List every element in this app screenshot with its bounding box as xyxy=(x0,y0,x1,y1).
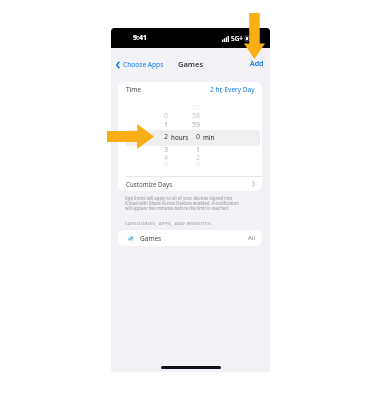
staticText: 57 xyxy=(192,103,201,113)
staticText: App limits will apply to all of your dev… xyxy=(125,195,245,211)
staticText: 2 xyxy=(164,132,169,142)
staticText: 58 xyxy=(192,111,201,121)
staticText: 2 xyxy=(196,153,201,163)
staticText: 3 xyxy=(196,160,201,170)
staticText: CATEGORIES, APPS, AND WEBSITES xyxy=(125,220,212,226)
staticText: Add xyxy=(250,59,264,69)
staticText: 9:41 xyxy=(133,33,147,43)
button[interactable]: Games xyxy=(118,230,262,246)
staticText: All xyxy=(248,234,255,242)
staticText: min xyxy=(203,133,215,141)
staticText: hours xyxy=(171,133,189,141)
staticText: Customize Days xyxy=(126,180,173,188)
staticText: 1 xyxy=(196,145,201,155)
staticText: Games xyxy=(178,59,204,69)
staticText: 4 xyxy=(164,153,169,163)
staticText: 59 xyxy=(192,120,201,130)
staticText: 5 xyxy=(164,160,169,170)
staticText: 2 hr, Every Day xyxy=(210,85,255,94)
staticText: 0 xyxy=(164,111,169,121)
staticText: 1 xyxy=(164,120,169,130)
button[interactable]: Choose Apps xyxy=(113,57,168,72)
staticText: 0 xyxy=(196,132,201,142)
button[interactable]: Customize Days xyxy=(118,177,262,191)
other: Arrow pointing to Add button xyxy=(244,13,265,59)
staticText: Time xyxy=(126,85,142,94)
other: Arrow pointing to time picker xyxy=(107,124,154,149)
staticText: Choose Apps xyxy=(123,60,164,69)
staticText: 5G+ xyxy=(231,34,243,43)
staticText: 3 xyxy=(164,145,169,155)
button[interactable]: Add xyxy=(244,55,270,73)
staticText: Games xyxy=(140,234,162,243)
